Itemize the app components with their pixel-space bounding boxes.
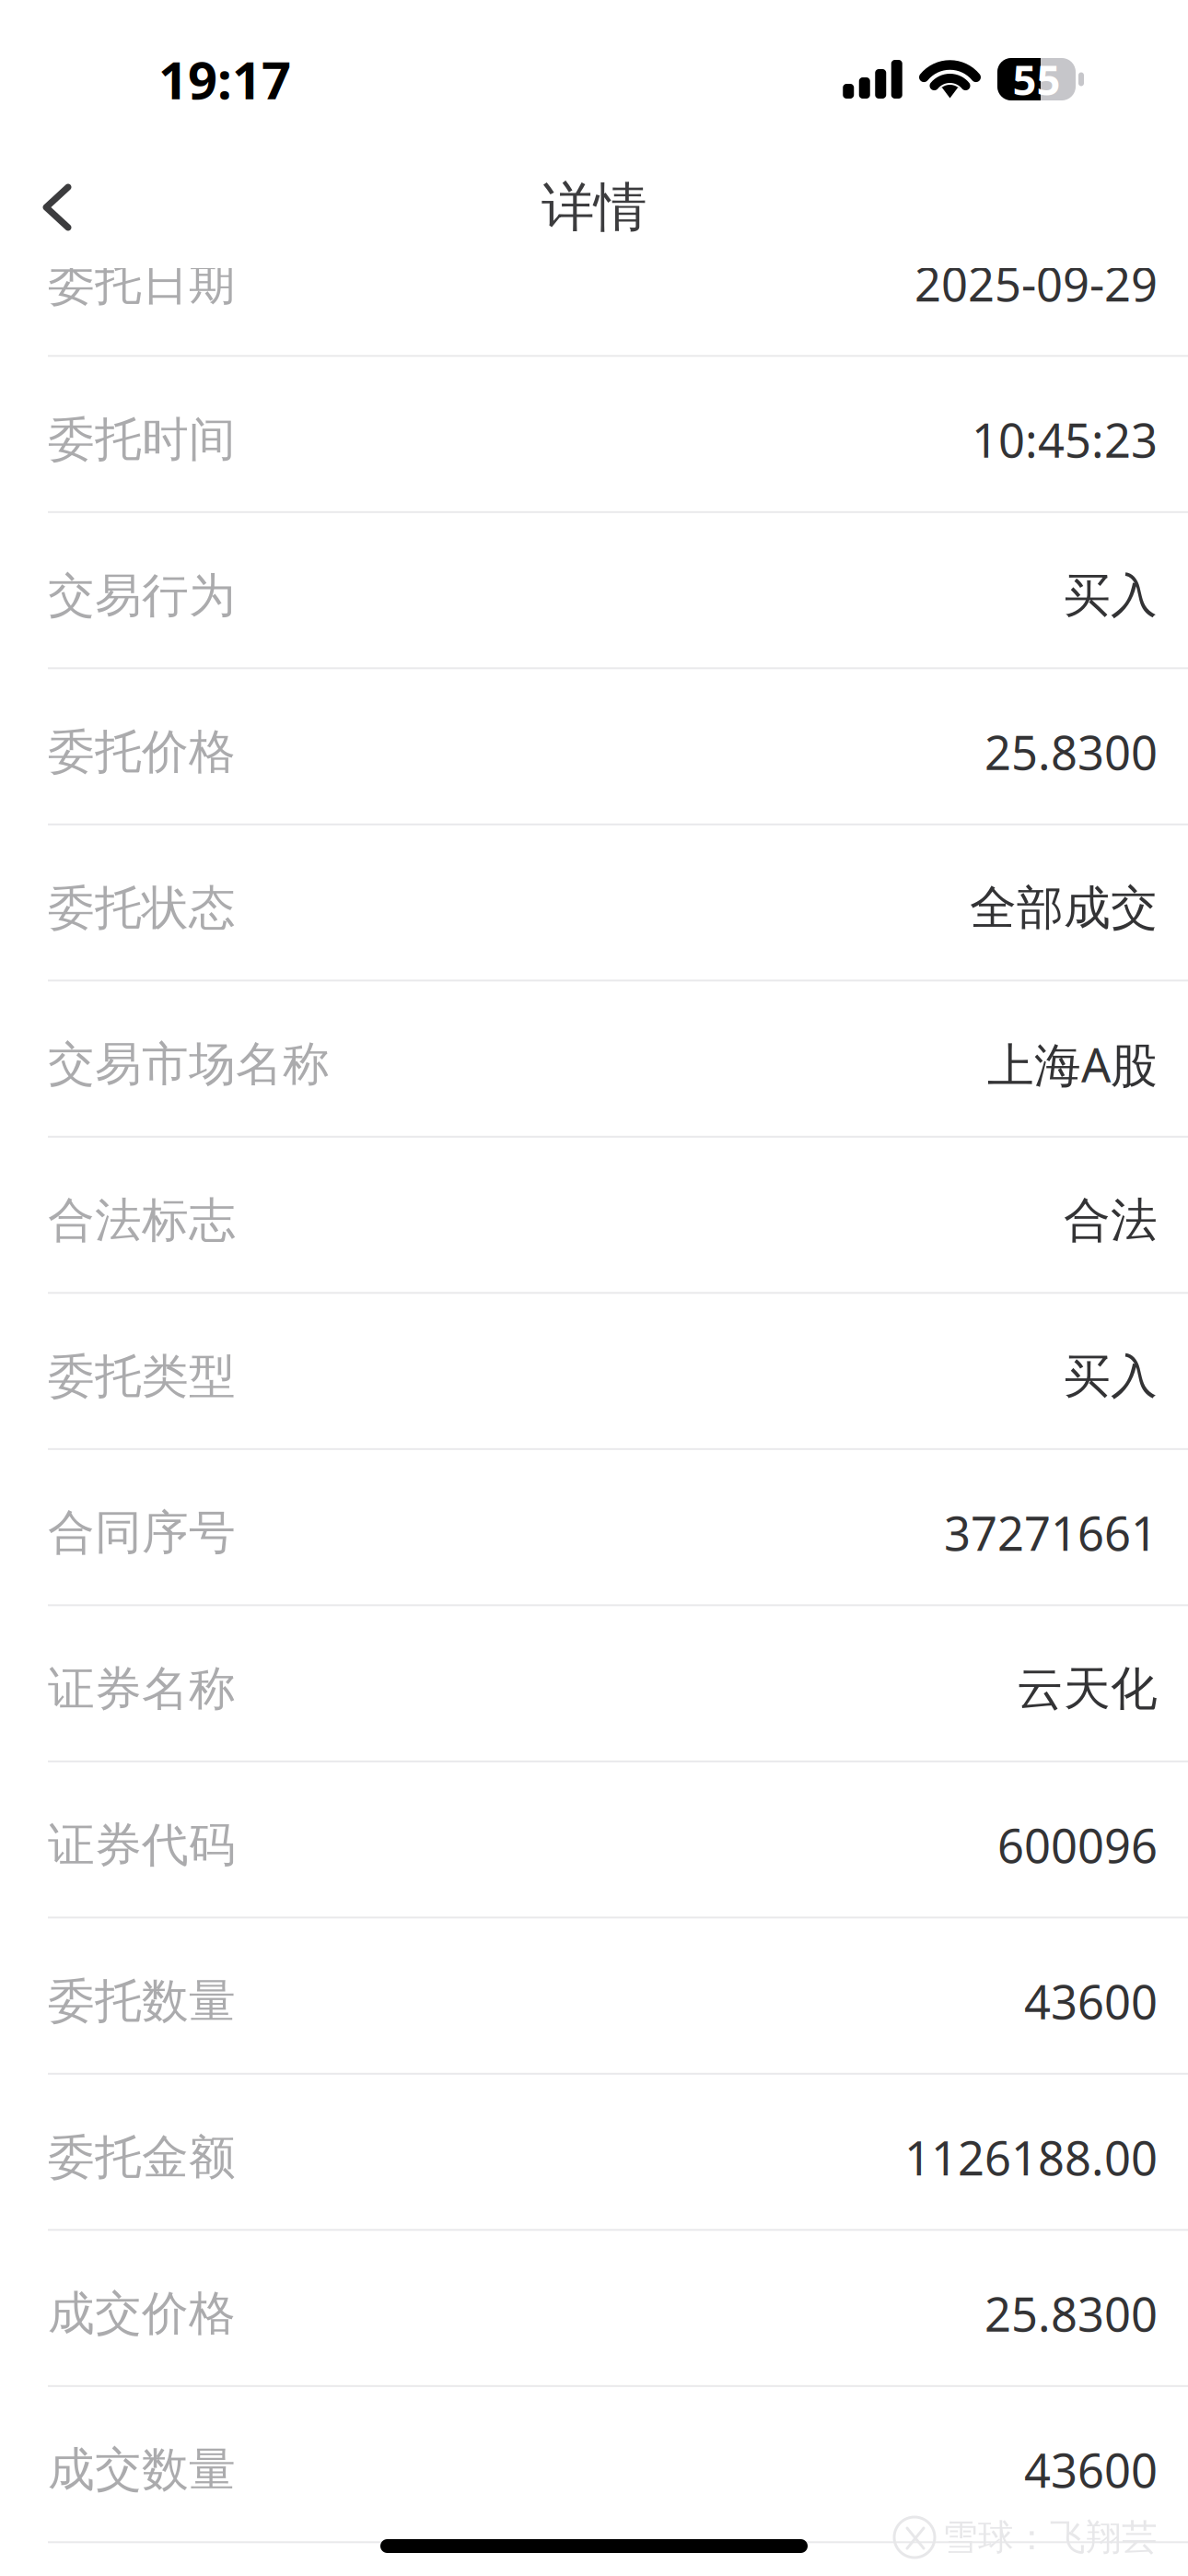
- staticText: 2025-09-29: [914, 252, 1158, 314]
- staticText: 委托金额: [48, 2129, 236, 2186]
- staticText: 55: [1013, 52, 1060, 107]
- staticText: 19:17: [158, 45, 291, 114]
- staticText: 成交价格: [48, 2285, 236, 2342]
- staticText: 43600: [1024, 1970, 1158, 2032]
- staticText: 雪球：飞翔芸: [942, 2515, 1158, 2559]
- staticText: 证券代码: [48, 1816, 236, 1874]
- staticText: 25.8300: [984, 721, 1158, 783]
- staticText: 云天化: [1017, 1660, 1158, 1717]
- staticText: 上海A股: [987, 1033, 1158, 1095]
- staticText: 委托日期: [48, 255, 236, 312]
- staticText: 买入: [1064, 567, 1158, 624]
- staticText: 委托时间: [48, 411, 236, 468]
- button[interactable]: 返回: [0, 179, 104, 236]
- staticText: 详情: [542, 175, 646, 240]
- staticText: 合同序号: [48, 1504, 236, 1561]
- staticText: 委托价格: [48, 723, 236, 780]
- staticText: 37271661: [944, 1502, 1158, 1564]
- staticText: 43600: [1024, 2439, 1158, 2501]
- staticText: 交易行为: [48, 567, 236, 624]
- staticText: 10:45:23: [972, 409, 1158, 471]
- staticText: 交易市场名称: [48, 1035, 330, 1093]
- staticText: 成交数量: [48, 2441, 236, 2498]
- staticText: 全部成交: [970, 879, 1158, 937]
- staticText: 合法: [1064, 1192, 1158, 1249]
- staticText: 25.8300: [984, 2282, 1158, 2344]
- staticText: 委托状态: [48, 879, 236, 937]
- staticText: 1126188.00: [904, 2126, 1158, 2188]
- staticText: 买入: [1064, 1348, 1158, 1405]
- staticText: 600096: [997, 1814, 1158, 1876]
- staticText: 证券名称: [48, 1660, 236, 1717]
- staticText: 委托类型: [48, 1348, 236, 1405]
- staticText: 合法标志: [48, 1192, 236, 1249]
- staticText: 委托数量: [48, 1972, 236, 2030]
